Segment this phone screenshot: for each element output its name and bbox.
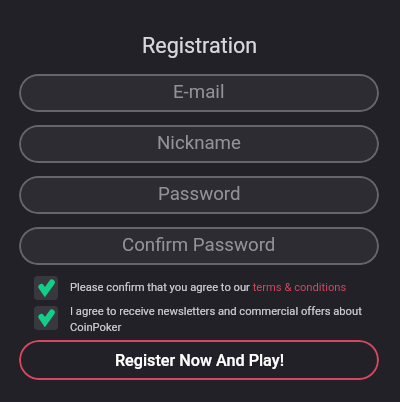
staticText: Please confirm that you agree to our ter…	[70, 281, 347, 294]
button[interactable]: Confirm Password	[19, 227, 379, 265]
other: Checked	[34, 276, 58, 300]
button[interactable]: Nickname	[19, 125, 379, 163]
button[interactable]: Password	[19, 176, 379, 214]
staticText: Nickname	[157, 132, 241, 154]
button[interactable]: Checked	[34, 306, 379, 335]
button[interactable]: E-mail	[19, 74, 379, 112]
button[interactable]: Checked	[34, 276, 379, 300]
staticText: Confirm Password	[122, 234, 276, 256]
staticText: E-mail	[173, 81, 225, 103]
staticText: Password	[158, 183, 241, 205]
other: Checked	[34, 306, 58, 330]
staticText: I agree to receive newsletters and comme…	[70, 305, 379, 334]
staticText: Registration	[142, 33, 258, 58]
staticText: Register Now And Play!	[115, 351, 284, 370]
button[interactable]: Register Now And Play!	[19, 340, 379, 380]
